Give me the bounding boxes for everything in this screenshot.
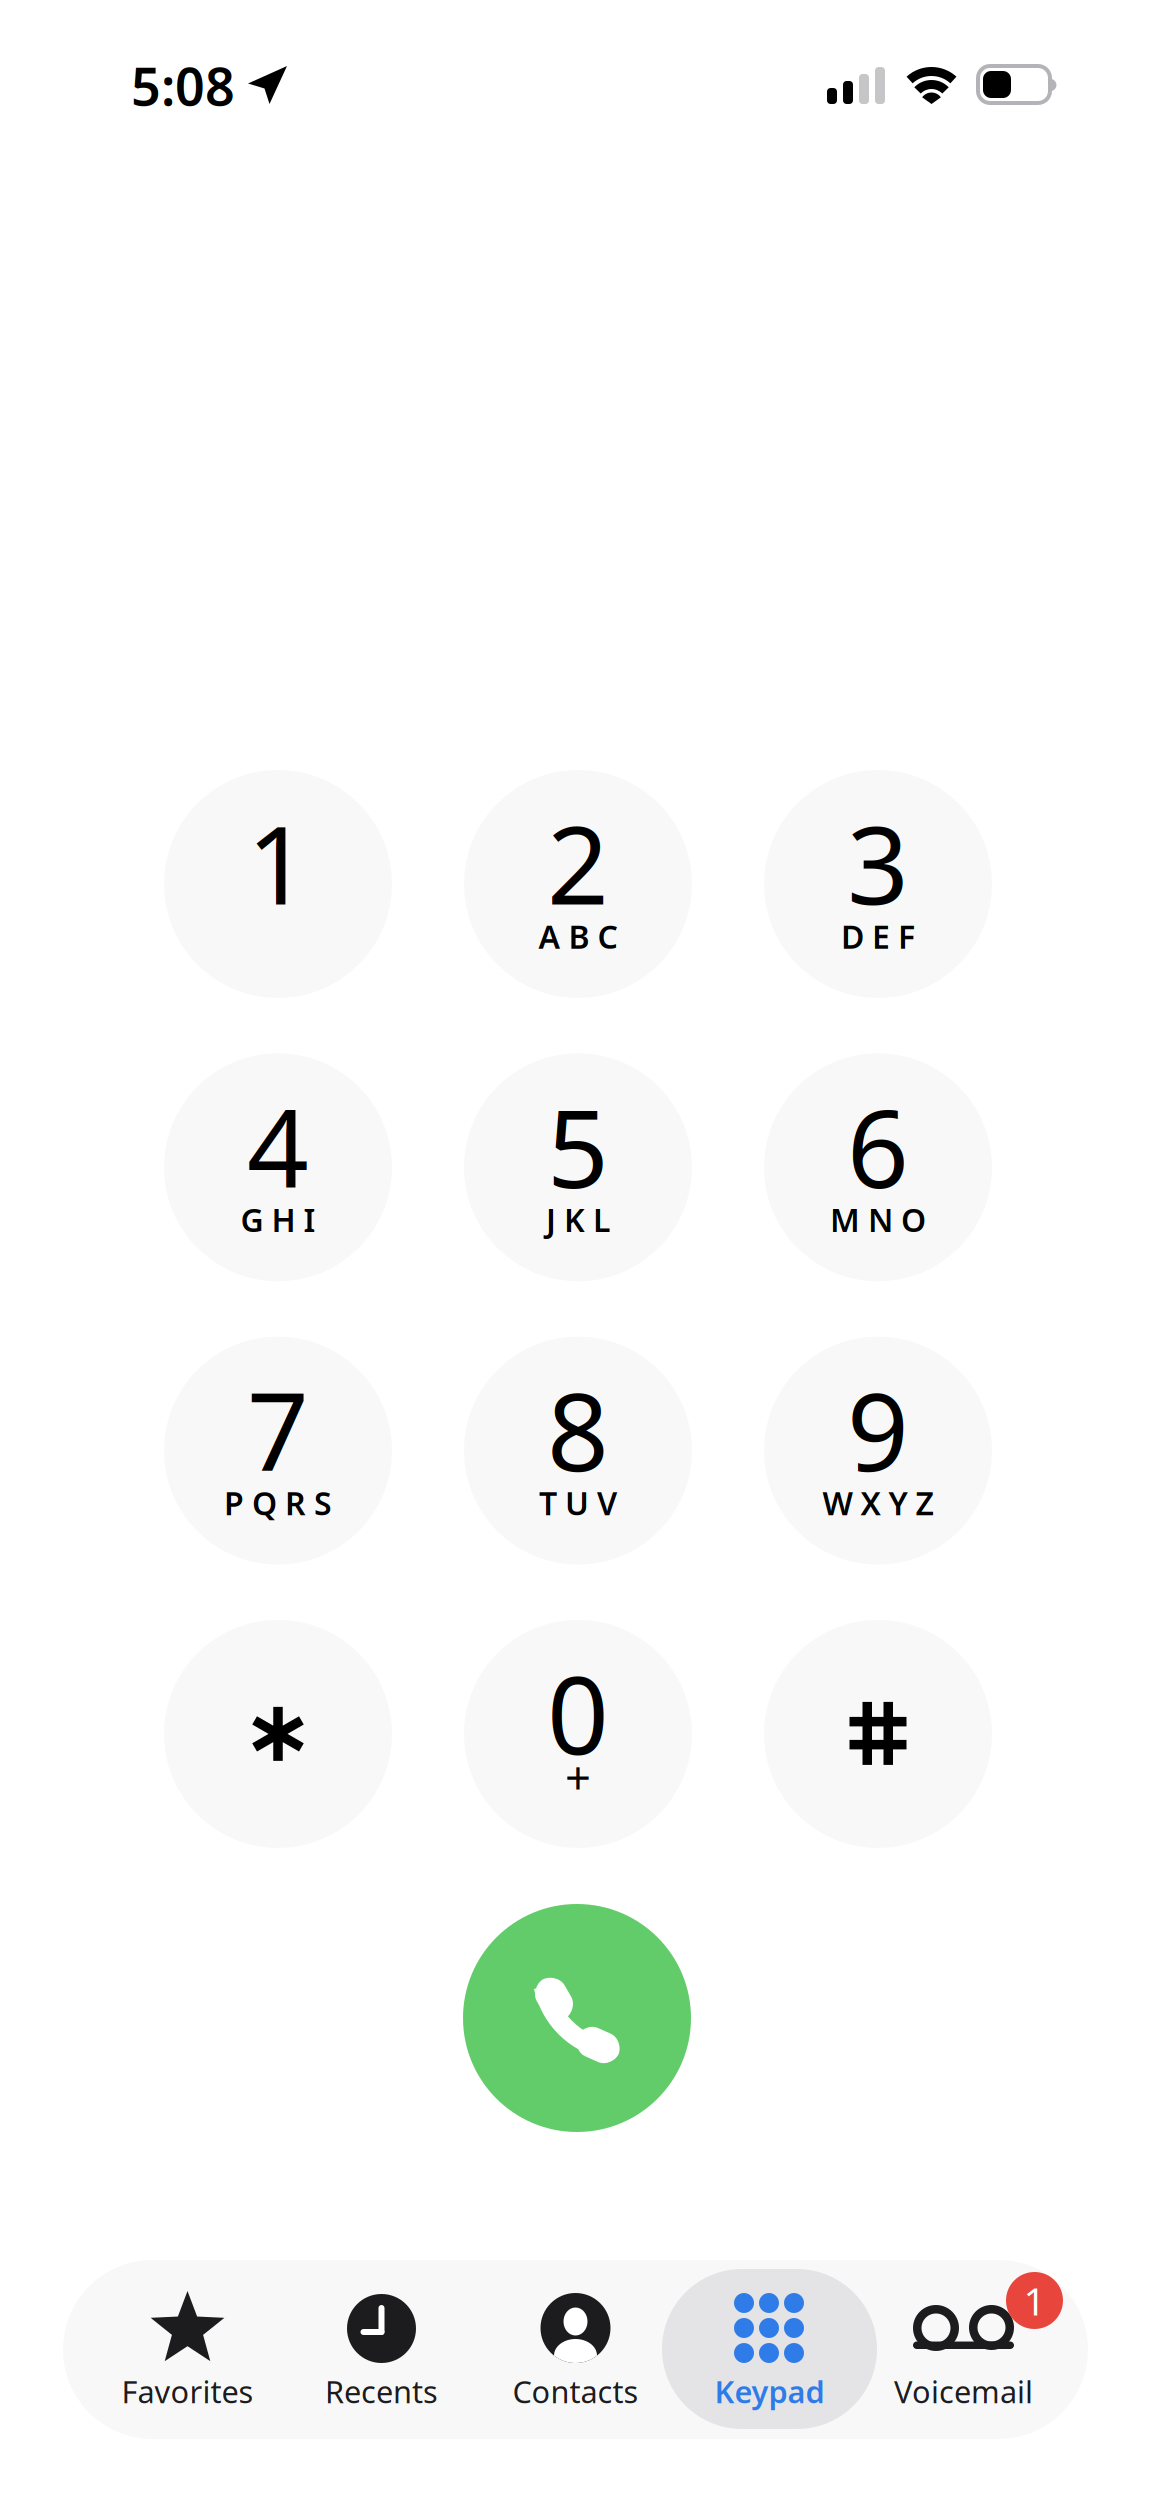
staticText: J K L — [546, 1198, 610, 1241]
button[interactable]: Keypad — [672, 2260, 866, 2439]
staticText: 5 — [547, 1074, 609, 1218]
button[interactable]: Favorites — [90, 2260, 284, 2439]
button[interactable]: Contacts — [478, 2260, 672, 2439]
button[interactable]: 2 — [464, 770, 692, 998]
button[interactable]: 1 — [164, 770, 392, 998]
staticText: Recents — [325, 2371, 438, 2412]
staticText: 1 — [247, 791, 309, 934]
staticText: 9 — [847, 1358, 909, 1501]
button[interactable]: Call — [463, 1904, 691, 2132]
staticText: 5:08 — [131, 51, 235, 120]
button[interactable]: Recents — [284, 2260, 478, 2439]
staticText: 4 — [247, 1074, 309, 1218]
staticText: Keypad — [714, 2371, 824, 2412]
staticText: 7 — [247, 1358, 309, 1501]
button[interactable]: 6 — [764, 1053, 992, 1281]
button[interactable]: 7 — [164, 1337, 392, 1565]
staticText: 2 — [547, 791, 609, 934]
staticText: + — [565, 1747, 591, 1807]
staticText: Contacts — [512, 2371, 638, 2412]
staticText: 3 — [847, 791, 909, 934]
staticText: D E F — [841, 915, 915, 957]
staticText: W X Y Z — [822, 1482, 933, 1524]
staticText: 1 — [1023, 2275, 1045, 2326]
button[interactable]: 0 — [464, 1620, 692, 1848]
button[interactable]: 3 — [764, 770, 992, 998]
staticText: 0 — [547, 1641, 609, 1784]
staticText: T U V — [539, 1482, 617, 1524]
staticText: A B C — [538, 915, 617, 957]
staticText: M N O — [830, 1198, 926, 1241]
staticText: 6 — [847, 1074, 909, 1218]
staticText: 8 — [547, 1358, 609, 1501]
button[interactable]: 9 — [764, 1337, 992, 1565]
button[interactable] — [164, 1620, 392, 1848]
button[interactable]: Voicemail — [866, 2260, 1060, 2439]
staticText: G H I — [240, 1198, 315, 1241]
button[interactable]: 4 — [164, 1053, 392, 1281]
button[interactable]: 5 — [464, 1053, 692, 1281]
button[interactable]: 8 — [464, 1337, 692, 1565]
staticText: Favorites — [121, 2371, 253, 2412]
button[interactable] — [764, 1620, 992, 1848]
staticText: Voicemail — [894, 2371, 1033, 2412]
staticText: P Q R S — [224, 1482, 332, 1524]
